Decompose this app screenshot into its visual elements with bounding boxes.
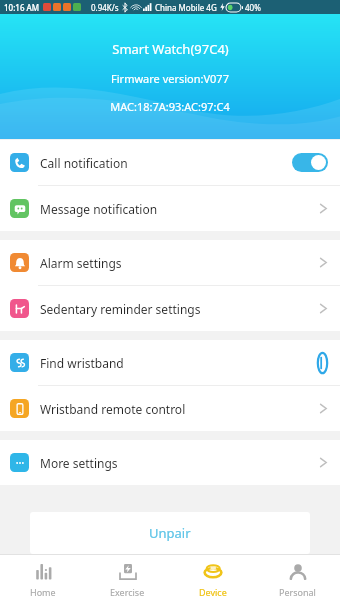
button[interactable]: Device <box>170 555 255 604</box>
staticText: Message notification <box>40 201 158 217</box>
button[interactable]: Personal <box>255 555 340 604</box>
button[interactable]: More settings <box>0 440 340 485</box>
staticText: Smart Watch(97C4) <box>112 40 229 58</box>
button[interactable]: Wristband remote control <box>0 386 340 431</box>
staticText: Wristband remote control <box>40 401 186 417</box>
staticText: China Mobile 4G <box>155 2 217 13</box>
staticText: Personal <box>279 586 316 598</box>
button[interactable]: Alarm settings <box>0 240 340 285</box>
staticText: Unpair <box>149 524 191 542</box>
button[interactable]: Call notification <box>0 140 340 185</box>
staticText: Home <box>30 586 56 598</box>
staticText: Exercise <box>110 586 145 598</box>
staticText: 0.94K/s <box>91 2 119 13</box>
staticText: Device <box>199 586 227 598</box>
button[interactable]: Exercise <box>85 555 170 604</box>
button[interactable]: Unpair <box>30 512 310 554</box>
staticText: Call notification <box>40 155 128 171</box>
staticText: Find wristband <box>40 355 124 371</box>
staticText: 40% <box>245 2 261 13</box>
button[interactable]: Message notification <box>0 186 340 231</box>
button[interactable]: Home <box>0 555 85 604</box>
staticText: Alarm settings <box>40 255 122 271</box>
staticText: Firmware version:V077 <box>111 71 229 86</box>
staticText: Sedentary reminder settings <box>40 301 201 317</box>
staticText: 10:16 AM <box>4 2 40 13</box>
staticText: MAC:18:7A:93:AC:97:C4 <box>110 99 230 114</box>
staticText: More settings <box>40 455 118 471</box>
button[interactable]: Find wristband <box>0 340 340 385</box>
button[interactable]: Find wristband <box>317 352 328 374</box>
button[interactable]: Sedentary reminder settings <box>0 286 340 331</box>
button[interactable]: Call notification toggle <box>292 153 328 172</box>
